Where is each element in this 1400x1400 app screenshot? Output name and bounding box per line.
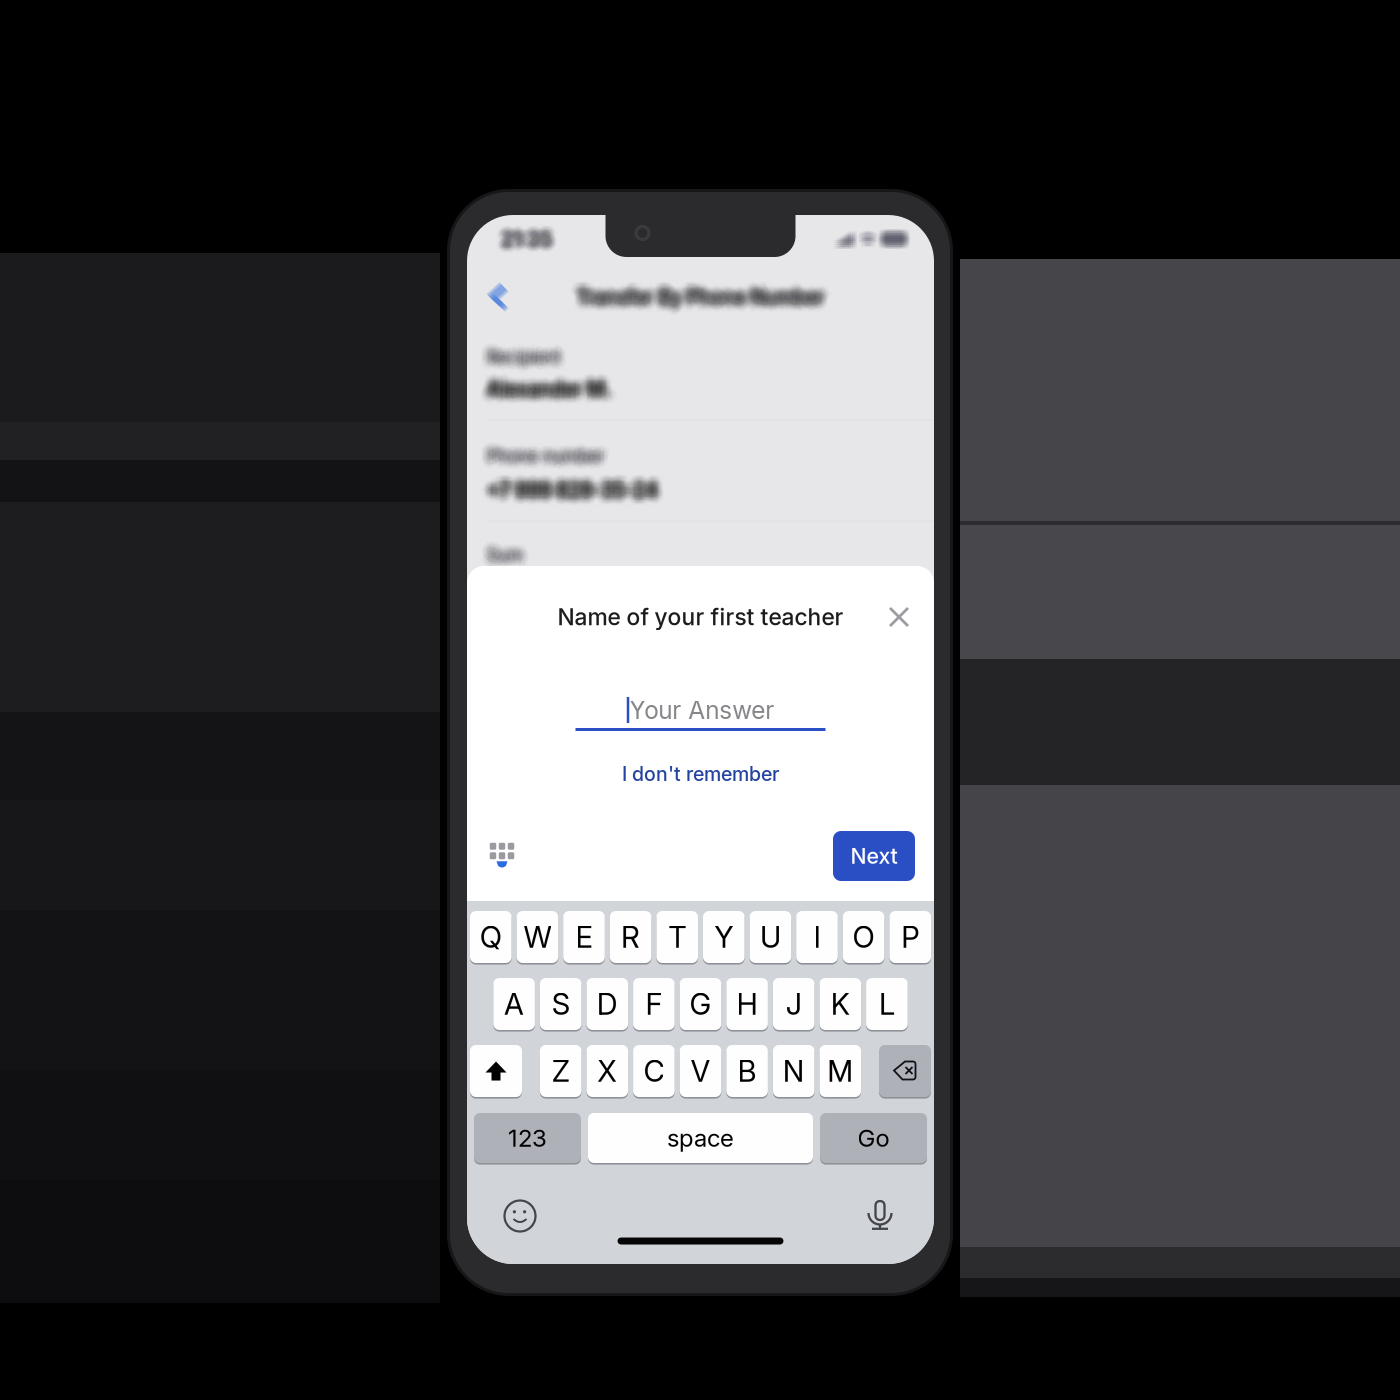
staticText: 21:35 <box>495 220 546 244</box>
staticText: Alexander M. <box>479 376 603 399</box>
staticText: Sum <box>481 552 517 573</box>
button[interactable]: I don't remember <box>622 731 779 789</box>
staticText: Recipient <box>489 352 562 372</box>
staticText: Alexander M. <box>477 374 601 397</box>
staticText: 21:35 <box>505 225 556 249</box>
staticText: 21:35 <box>497 233 548 257</box>
staticText: Sum <box>481 540 517 560</box>
button[interactable]: E <box>563 910 605 964</box>
staticText: Sum <box>484 536 520 557</box>
staticText: Transfer By Phone Number <box>574 290 822 313</box>
button[interactable]: Y <box>703 910 745 964</box>
button[interactable]: 123 <box>474 1112 581 1164</box>
button[interactable]: Close <box>880 598 918 636</box>
staticText: +7 999 828-35-24 <box>481 476 652 499</box>
button[interactable]: Delete <box>879 1044 931 1098</box>
staticText: 21:35 <box>508 231 559 255</box>
staticText: Recipient <box>490 346 563 366</box>
staticText: Transfer By Phone Number <box>581 276 829 299</box>
button[interactable]: I <box>796 910 838 964</box>
staticText: 21:35 <box>497 234 548 258</box>
button[interactable]: B <box>726 1044 768 1098</box>
staticText: B <box>738 1053 757 1089</box>
staticText: Phone number <box>489 448 606 468</box>
button[interactable]: Hide keyboard <box>481 835 523 877</box>
staticText: Alexander M. <box>496 370 620 394</box>
staticText: 21:35 <box>504 230 555 255</box>
staticText: +7 999 828-35-24 <box>479 479 650 503</box>
staticText: Recipient <box>480 344 553 364</box>
button[interactable]: Q <box>470 910 512 964</box>
button[interactable]: X <box>586 1044 628 1098</box>
staticText: Transfer By Phone Number <box>567 276 815 299</box>
button[interactable]: K <box>819 977 861 1031</box>
button[interactable]: L <box>866 977 908 1031</box>
button[interactable]: A <box>493 977 535 1031</box>
staticText: Transfer By Phone Number <box>581 292 829 315</box>
staticText: Phone number <box>492 454 609 475</box>
button[interactable]: S <box>540 977 581 1031</box>
staticText: Alexander M. <box>483 383 607 407</box>
staticText: Sum <box>492 538 528 559</box>
staticText: 21:35 <box>507 229 558 253</box>
staticText: 21:35 <box>505 229 556 253</box>
button[interactable]: H <box>726 977 768 1031</box>
staticText: Alexander M. <box>485 376 609 399</box>
staticText: Recipient <box>494 340 567 361</box>
button[interactable]: D <box>586 977 628 1031</box>
staticText: +7 999 828-35-24 <box>480 471 651 495</box>
staticText: Phone number <box>478 450 595 470</box>
staticText: Sum <box>489 540 525 560</box>
button[interactable]: C <box>633 1044 675 1098</box>
button[interactable]: M <box>819 1044 861 1098</box>
button[interactable]: Next <box>833 831 915 881</box>
button[interactable]: Dictation <box>858 1194 902 1238</box>
staticText: Phone number <box>485 450 602 470</box>
button[interactable]: U <box>750 910 791 964</box>
staticText: Alexander M. <box>496 381 620 404</box>
staticText: Phone number <box>495 450 612 470</box>
button[interactable]: Emoji <box>498 1194 542 1238</box>
staticText: Alexander M. <box>488 377 612 401</box>
staticText: +7 999 828-35-24 <box>487 474 658 497</box>
staticText: 21:35 <box>497 224 548 248</box>
staticText: Sum <box>481 553 517 574</box>
staticText: Recipient <box>480 355 553 376</box>
staticText: Sum <box>490 545 526 565</box>
button[interactable]: T <box>656 910 698 964</box>
staticText: Alexander M. <box>477 369 601 392</box>
staticText: Alexander M. <box>479 373 603 396</box>
button[interactable]: P <box>889 910 931 964</box>
staticText: +7 999 828-35-24 <box>493 481 664 504</box>
staticText: Alexander M. <box>489 369 613 392</box>
staticText: Recipient <box>488 349 561 369</box>
staticText: Alexander M. <box>477 380 601 403</box>
button[interactable]: F <box>633 977 675 1031</box>
staticText: Phone number <box>484 445 601 465</box>
staticText: 21:35 <box>501 222 552 247</box>
staticText: Recipient <box>478 352 551 372</box>
staticText: +7 999 828-35-24 <box>496 469 667 492</box>
staticText: Transfer By Phone Number <box>582 293 830 316</box>
staticText: Transfer By Phone Number <box>573 292 821 315</box>
staticText: Phone number <box>492 452 609 472</box>
staticText: Alexander M. <box>492 381 616 404</box>
staticText: Alexander M. <box>487 384 611 408</box>
button[interactable]: R <box>610 910 651 964</box>
staticText: Recipient <box>492 339 565 360</box>
staticText: 21:35 <box>507 221 558 245</box>
button[interactable]: J <box>773 977 814 1031</box>
button[interactable]: W <box>517 910 558 964</box>
staticText: Recipient <box>480 339 553 360</box>
button[interactable]: space <box>588 1112 813 1164</box>
button[interactable]: N <box>773 1044 814 1098</box>
staticText: Recipient <box>488 354 561 375</box>
button[interactable]: Shift <box>470 1044 522 1098</box>
button[interactable]: Back <box>479 277 519 317</box>
button[interactable]: Go <box>820 1112 927 1164</box>
button[interactable]: O <box>843 910 884 964</box>
button[interactable]: Z <box>540 1044 581 1098</box>
staticText: Alexander M. <box>496 384 620 408</box>
button[interactable]: V <box>680 1044 721 1098</box>
button[interactable]: G <box>680 977 721 1031</box>
